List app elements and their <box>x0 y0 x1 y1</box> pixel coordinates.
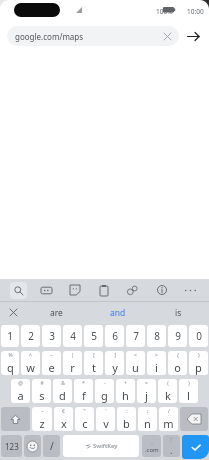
button[interactable]: € <box>54 407 73 431</box>
button[interactable]: { <box>168 351 187 375</box>
staticText: 10:00 <box>187 7 204 16</box>
button[interactable]: [ <box>84 351 103 375</box>
button[interactable]: 8 <box>147 325 166 347</box>
staticText: k <box>165 388 171 403</box>
staticText: n <box>144 416 151 431</box>
staticText: * <box>82 380 85 387</box>
staticText: is <box>175 307 182 319</box>
button[interactable]: % <box>1 351 19 375</box>
button[interactable]: ? <box>163 435 180 457</box>
staticText: @ <box>18 380 23 387</box>
button[interactable]: Enter <box>182 435 209 459</box>
staticText: google.com/maps <box>15 31 161 42</box>
staticText: g <box>101 388 108 403</box>
button[interactable]: Search <box>4 279 32 301</box>
staticText: s <box>39 388 45 403</box>
staticText: h <box>122 388 129 403</box>
button[interactable]: : <box>117 407 136 431</box>
button[interactable]: / <box>159 407 178 431</box>
button[interactable]: " <box>75 407 94 431</box>
button[interactable]: Clipboard <box>89 279 118 301</box>
staticText: % <box>8 352 13 359</box>
button[interactable]: < <box>126 351 145 375</box>
button[interactable]: Translate <box>118 279 147 301</box>
staticText: 123 <box>5 441 19 452</box>
button[interactable]: ' <box>96 407 115 431</box>
button[interactable]: 1 <box>1 325 19 347</box>
staticText: > <box>155 352 158 359</box>
staticText: ] <box>114 352 116 359</box>
staticText: 9 <box>175 329 181 343</box>
button[interactable]: ~ <box>42 351 61 375</box>
button[interactable]: ( <box>158 379 177 403</box>
button[interactable]: Space <box>63 435 139 457</box>
button[interactable]: google.com/maps <box>7 26 179 46</box>
button[interactable]: Clear <box>161 30 173 42</box>
button[interactable]: | <box>63 351 82 375</box>
staticText: t <box>92 360 96 375</box>
staticText: 1 <box>7 329 13 343</box>
staticText: ( <box>167 380 169 387</box>
staticText: : <box>126 408 128 415</box>
button[interactable]: 7 <box>126 325 145 347</box>
button[interactable]: More <box>176 279 205 301</box>
button[interactable]: ~ <box>32 407 52 431</box>
staticText: ? <box>170 437 173 444</box>
staticText: and <box>110 307 126 319</box>
staticText: < <box>134 352 137 359</box>
button[interactable]: @ <box>11 379 30 403</box>
button[interactable]: Shift <box>1 407 30 431</box>
staticText: f <box>82 388 86 403</box>
button[interactable]: 0 <box>189 325 208 347</box>
button[interactable]: ^ <box>21 351 40 375</box>
button[interactable]: > <box>147 351 166 375</box>
staticText: _ <box>151 439 154 446</box>
button[interactable]: GIF <box>32 279 60 301</box>
button[interactable]: / <box>43 435 60 457</box>
staticText: & <box>61 380 65 387</box>
button[interactable]: # <box>32 379 51 403</box>
button[interactable]: } <box>189 351 208 375</box>
staticText: are <box>50 307 63 319</box>
button[interactable]: and <box>87 302 148 323</box>
staticText: m <box>163 416 174 431</box>
staticText: 3 <box>49 329 55 343</box>
button[interactable]: Info <box>147 279 176 301</box>
staticText: € <box>62 408 65 415</box>
button[interactable]: Emoji <box>24 435 41 457</box>
staticText: w <box>26 360 35 375</box>
button[interactable]: 123 <box>1 435 22 457</box>
button[interactable]: Backspace <box>180 407 208 431</box>
button[interactable]: ] <box>105 351 124 375</box>
staticText: ) <box>188 380 190 387</box>
button[interactable]: _ <box>142 435 161 457</box>
button[interactable]: is <box>148 302 209 323</box>
staticText: [ <box>93 352 95 359</box>
button[interactable]: = <box>137 379 156 403</box>
button[interactable]: 9 <box>168 325 187 347</box>
button[interactable]: & <box>53 379 72 403</box>
button[interactable]: + <box>116 379 135 403</box>
staticText: 7 <box>133 329 139 343</box>
button[interactable]: ; <box>138 407 157 431</box>
button[interactable]: Close predictions <box>0 302 26 323</box>
button[interactable]: ) <box>179 379 198 403</box>
button[interactable]: are <box>26 302 87 323</box>
staticText: 100% <box>156 7 173 16</box>
button[interactable]: Sticker <box>60 279 89 301</box>
button[interactable]: 3 <box>42 325 61 347</box>
staticText: z <box>39 416 45 431</box>
staticText: + <box>124 380 127 387</box>
button[interactable]: * <box>74 379 93 403</box>
button[interactable]: 5 <box>84 325 103 347</box>
button[interactable]: Go <box>183 26 203 46</box>
staticText: - <box>104 380 106 387</box>
staticText: 5 <box>91 329 97 343</box>
button[interactable]: 4 <box>63 325 82 347</box>
button[interactable]: - <box>95 379 114 403</box>
staticText: v <box>103 416 109 431</box>
staticText: ' <box>105 408 107 415</box>
button[interactable]: 6 <box>105 325 124 347</box>
staticText: .com <box>145 446 159 454</box>
button[interactable]: 2 <box>21 325 40 347</box>
